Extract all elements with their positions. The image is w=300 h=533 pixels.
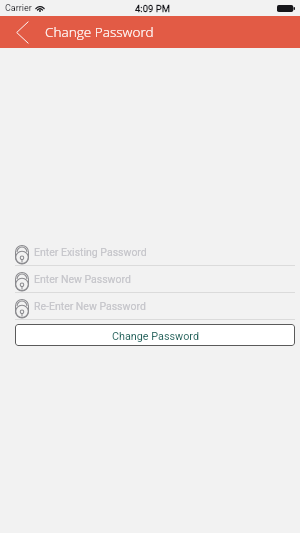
staticText: Change Password [112,330,199,343]
staticText: 4:09 PM [135,3,170,14]
staticText: Change Password [45,22,154,41]
staticText: Enter New Password [34,273,131,285]
button[interactable]: Back [13,16,31,48]
button[interactable]: Change Password [15,324,295,346]
staticText: Re-Enter New Password [34,300,146,312]
staticText: Carrier [5,3,32,14]
staticText: Enter Existing Password [34,246,147,258]
